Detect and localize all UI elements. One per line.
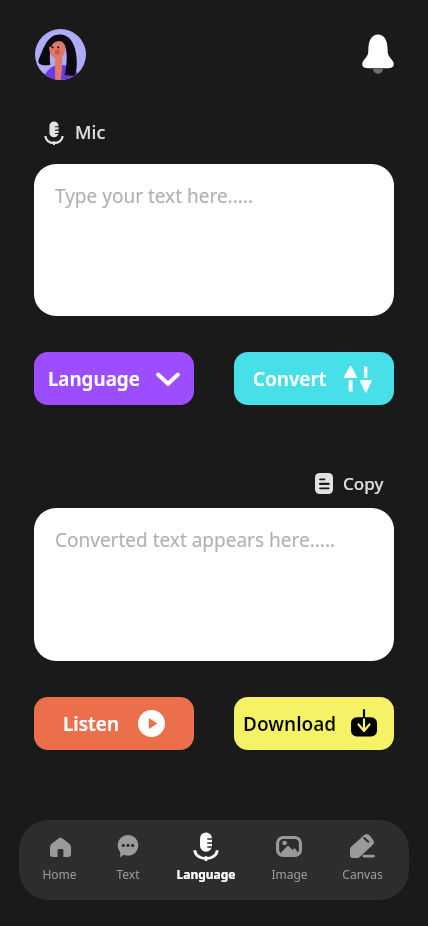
button[interactable]: Canvas [324,820,400,900]
staticText: Listen [63,711,120,737]
button[interactable]: Download [234,697,394,750]
staticText: Mic [75,120,106,145]
staticText: Copy [343,472,384,495]
staticText: Language [48,366,140,392]
button[interactable]: Text [97,820,172,900]
button[interactable]: Mic [44,120,106,145]
button[interactable]: Image [248,820,324,900]
staticText: Language [176,866,236,882]
button[interactable]: Notifications [353,35,393,75]
button[interactable]: Language [34,352,194,405]
button[interactable]: Type your text here..... [34,164,394,316]
staticText: Canvas [342,866,383,882]
staticText: Type your text here..... [55,183,254,209]
button[interactable]: Listen [34,697,194,750]
staticText: Converted text appears here..... [55,527,336,553]
button[interactable]: Convert [234,352,394,405]
button[interactable]: Converted text appears here..... [34,508,394,661]
staticText: Text [116,866,140,882]
button[interactable]: Home [22,820,97,900]
staticText: Image [271,866,308,882]
staticText: Home [42,866,77,882]
button[interactable]: Language [172,820,248,900]
button[interactable]: Copy [315,472,384,495]
staticText: Convert [253,366,327,392]
button[interactable]: Profile [35,29,86,80]
staticText: Download [243,711,337,737]
